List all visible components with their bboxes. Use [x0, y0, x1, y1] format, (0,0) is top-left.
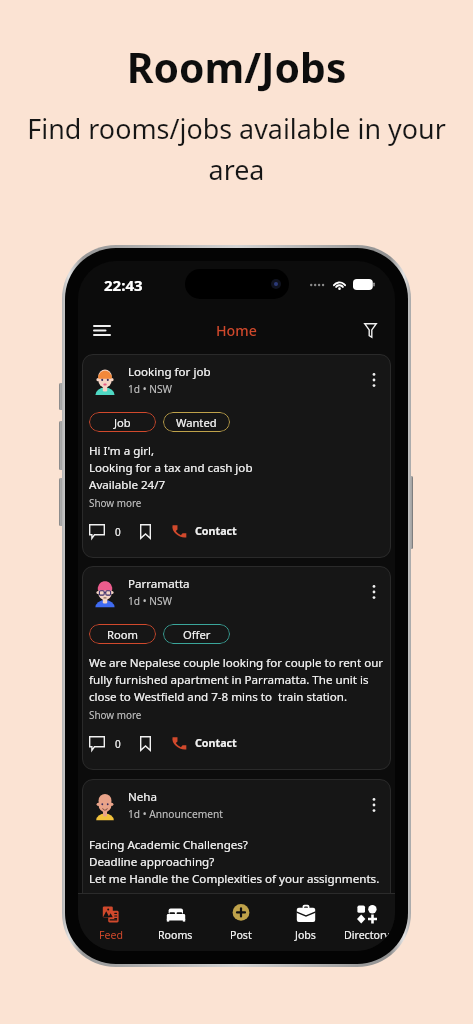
button[interactable]: 0 [89, 524, 121, 539]
staticText: Offer [183, 627, 211, 642]
button[interactable]: Post [208, 894, 273, 951]
staticText: Show more [89, 708, 142, 721]
button[interactable]: Menu [85, 313, 119, 347]
button[interactable]: More options [364, 795, 384, 815]
staticText: We are Nepalese couple looking for coupl… [89, 655, 384, 671]
staticText: 1d • NSW [128, 594, 173, 608]
button[interactable]: Rooms [143, 894, 208, 951]
button[interactable]: More options [364, 370, 384, 390]
button[interactable]: Contact [170, 523, 237, 539]
staticText: Room [107, 627, 138, 642]
staticText: Feed [99, 928, 123, 942]
button[interactable]: Job [89, 412, 156, 432]
staticText: Let me Handle the Complexities of your a… [89, 871, 384, 887]
staticText: close to Westfield and 7-8 mins to train… [89, 689, 384, 705]
staticText: Show more [89, 496, 142, 509]
button[interactable]: More options [364, 582, 384, 602]
button[interactable]: Parramatta [82, 566, 391, 770]
staticText: Deadline approaching? [89, 854, 384, 870]
staticText: Post [230, 928, 252, 942]
staticText: Job [114, 415, 131, 430]
button[interactable]: Show more [89, 708, 142, 721]
staticText: Contact [195, 736, 237, 751]
staticText: 0 [115, 525, 121, 539]
button[interactable]: Looking for job [82, 354, 391, 558]
staticText: fully furnished apartment in Parramatta.… [89, 672, 384, 688]
button[interactable]: Room [89, 624, 156, 644]
button[interactable]: Offer [163, 624, 230, 644]
button[interactable]: Feed [78, 894, 143, 951]
button[interactable]: Neha [82, 779, 391, 893]
staticText: Directory [344, 928, 390, 942]
staticText: Hi I'm a girl, [89, 443, 384, 459]
staticText: Looking for a tax and cash job [89, 460, 384, 476]
staticText: 22:43 [104, 275, 143, 295]
staticText: Facing Academic Challenges? [89, 837, 384, 853]
staticText: 1d • NSW [128, 382, 173, 396]
button[interactable]: Filter [353, 313, 387, 347]
button[interactable]: Show more [89, 496, 142, 509]
staticText: Contact [195, 524, 237, 539]
button[interactable]: Directory [338, 894, 395, 951]
button[interactable]: Wanted [163, 412, 230, 432]
button[interactable]: Contact [170, 735, 237, 751]
button[interactable]: Save [140, 524, 151, 539]
staticText: Neha [128, 789, 158, 805]
staticText: 1d • Announcement [128, 807, 223, 821]
staticText: Find rooms/jobs available in your area [13, 110, 460, 188]
button[interactable]: Jobs [273, 894, 338, 951]
staticText: Parramatta [128, 576, 190, 592]
staticText: Room/Jobs [0, 39, 473, 95]
staticText: Available 24/7 [89, 477, 384, 493]
staticText: Rooms [158, 928, 193, 942]
button[interactable]: 0 [89, 736, 121, 751]
staticText: 0 [115, 737, 121, 751]
staticText: Jobs [295, 928, 316, 942]
staticText: Looking for job [128, 364, 211, 380]
staticText: Wanted [176, 415, 217, 430]
staticText: Home [216, 321, 257, 340]
button[interactable]: Save [140, 736, 151, 751]
